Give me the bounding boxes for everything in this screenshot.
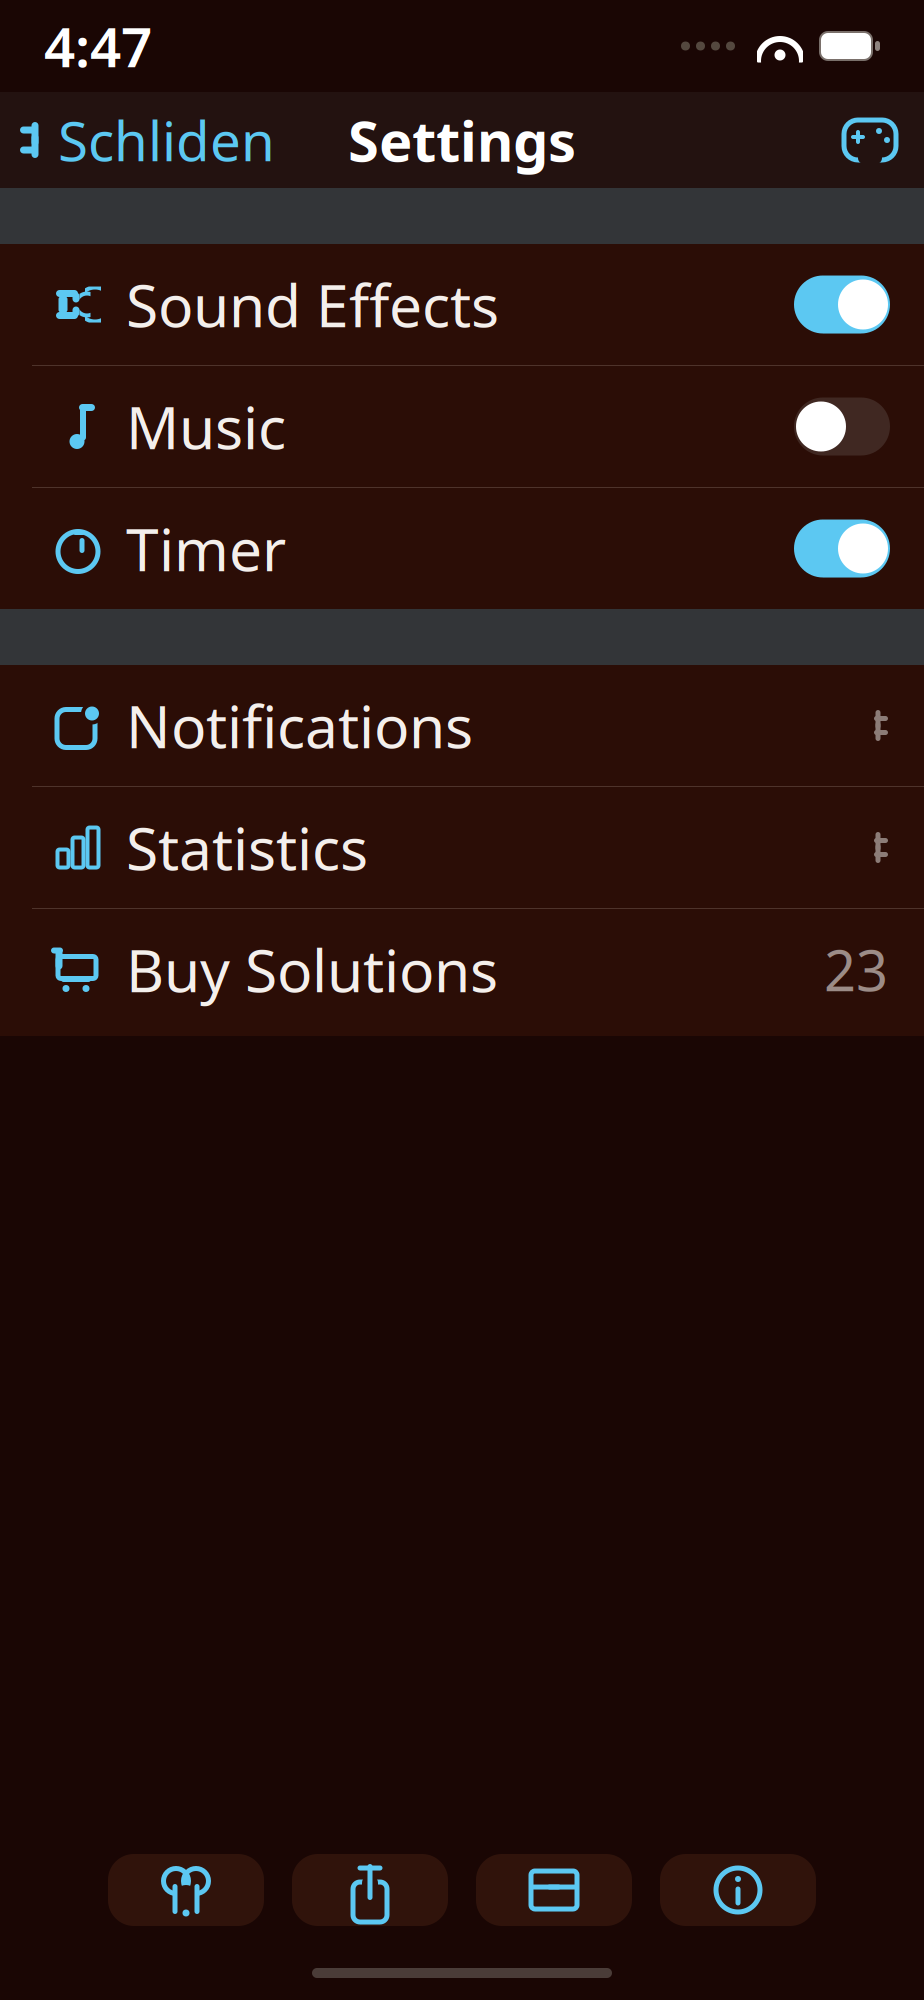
button[interactable]: Timer	[0, 488, 924, 609]
staticText: Schliden	[58, 104, 275, 176]
button[interactable]: Statistics	[0, 787, 924, 908]
staticText: Timer	[126, 509, 286, 587]
staticText: Statistics	[126, 808, 368, 886]
button[interactable]: Notifications	[0, 665, 924, 786]
staticText: Settings	[348, 103, 576, 177]
button[interactable]: Music	[0, 366, 924, 487]
staticText: Buy Solutions	[126, 930, 498, 1008]
button[interactable]: Sound Effects	[0, 244, 924, 365]
staticText: Music	[126, 387, 286, 465]
button[interactable]: Favorite	[108, 1854, 264, 1926]
button[interactable]: Game Center	[816, 103, 924, 177]
button[interactable]: Info	[660, 1854, 816, 1926]
button[interactable]: Share	[292, 1854, 448, 1926]
button[interactable]: Schliden	[0, 92, 293, 188]
staticText: Sound Effects	[126, 265, 499, 343]
staticText: Notifications	[126, 686, 473, 764]
staticText: 23	[824, 932, 888, 1007]
button[interactable]: Buy Solutions	[0, 909, 924, 1030]
staticText: 4:47	[44, 10, 152, 82]
button[interactable]: Mail	[476, 1854, 632, 1926]
